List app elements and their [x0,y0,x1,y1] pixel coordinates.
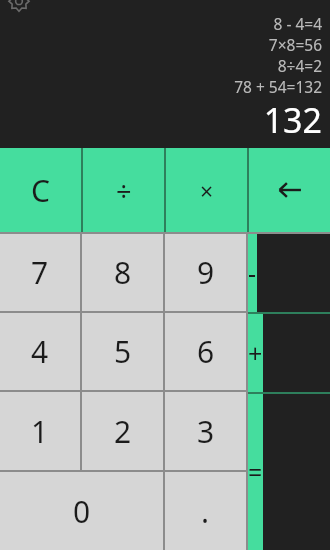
staticText: 132 [0,97,322,143]
button[interactable]: + [248,314,263,392]
button[interactable]: 0 [0,472,163,550]
staticText: = [248,455,263,489]
staticText: 9 [197,252,215,293]
staticText: 8 - 4=4 [0,13,322,34]
staticText: ÷ [116,172,132,209]
button[interactable]: Backspace [249,148,330,232]
button[interactable]: 6 [165,313,246,390]
button[interactable]: - [248,234,257,312]
staticText: 1 [31,411,49,452]
staticText: . [201,491,210,532]
staticText: - [248,256,257,290]
staticText: 7 [31,252,49,293]
button[interactable]: = [248,394,263,550]
button[interactable]: 5 [82,313,163,390]
button[interactable]: 8 [82,234,163,311]
staticText: × [200,175,214,206]
button[interactable]: . [165,472,246,550]
button[interactable]: 4 [0,313,80,390]
staticText: 6 [197,331,215,372]
button[interactable]: Settings [7,0,31,24]
button[interactable]: × [166,148,247,232]
button[interactable]: 9 [165,234,246,311]
staticText: + [248,336,263,370]
staticText: C [31,170,50,211]
staticText: 0 [73,491,91,532]
button[interactable]: 2 [82,392,163,470]
staticText: 78 + 54=132 [0,76,322,97]
staticText: 3 [197,411,215,452]
staticText: 5 [114,331,132,372]
staticText: 4 [31,331,49,372]
staticText: 7×8=56 [0,34,322,55]
button[interactable]: 3 [165,392,246,470]
button[interactable]: ÷ [83,148,164,232]
button[interactable]: 1 [0,392,80,470]
staticText: 8 [114,252,132,293]
button[interactable]: 7 [0,234,80,311]
staticText: 2 [114,411,132,452]
button[interactable]: C [0,148,81,232]
staticText: 8÷4=2 [0,55,322,76]
